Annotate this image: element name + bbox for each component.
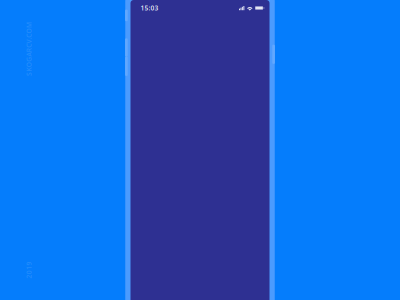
staticText: 15:03 <box>140 4 158 12</box>
button[interactable]: Volume down <box>125 57 128 76</box>
button[interactable]: Ring/Silent switch <box>125 10 128 21</box>
button[interactable]: Side button <box>272 45 275 64</box>
staticText: 2019 <box>20 266 37 274</box>
button[interactable]: App splash screen <box>130 0 269 300</box>
button[interactable]: Volume up <box>125 38 128 57</box>
staticText: SKOGARCV.COM <box>2 45 56 53</box>
